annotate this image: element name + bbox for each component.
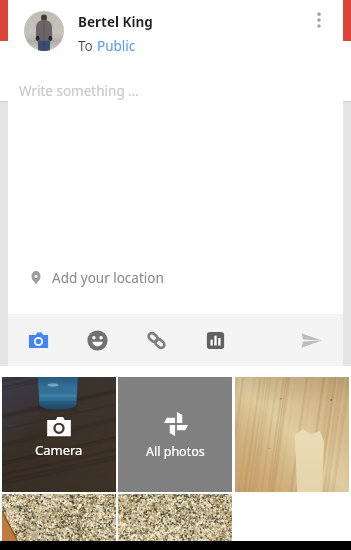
staticText: Camera xyxy=(35,441,83,459)
button[interactable] xyxy=(118,494,232,541)
staticText: Public xyxy=(97,37,136,55)
button[interactable] xyxy=(2,494,116,541)
button[interactable]: More options xyxy=(301,2,337,38)
button[interactable]: Add emoji xyxy=(79,322,115,358)
button[interactable]: Add your location xyxy=(8,262,343,294)
staticText: All photos xyxy=(146,443,205,460)
button[interactable]: All photos xyxy=(118,377,232,492)
button[interactable]: Send post xyxy=(293,322,329,358)
staticText: To xyxy=(78,37,97,55)
button[interactable]: Write something … xyxy=(8,63,343,262)
button[interactable]: Add link xyxy=(138,322,174,358)
staticText: Bertel King xyxy=(78,13,153,31)
staticText: Add your location xyxy=(52,269,164,287)
staticText: Write something … xyxy=(19,82,139,100)
button[interactable] xyxy=(235,377,349,492)
button[interactable]: Camera xyxy=(2,377,116,492)
button[interactable]: Create poll xyxy=(197,322,233,358)
button[interactable]: Add photo xyxy=(20,322,56,358)
